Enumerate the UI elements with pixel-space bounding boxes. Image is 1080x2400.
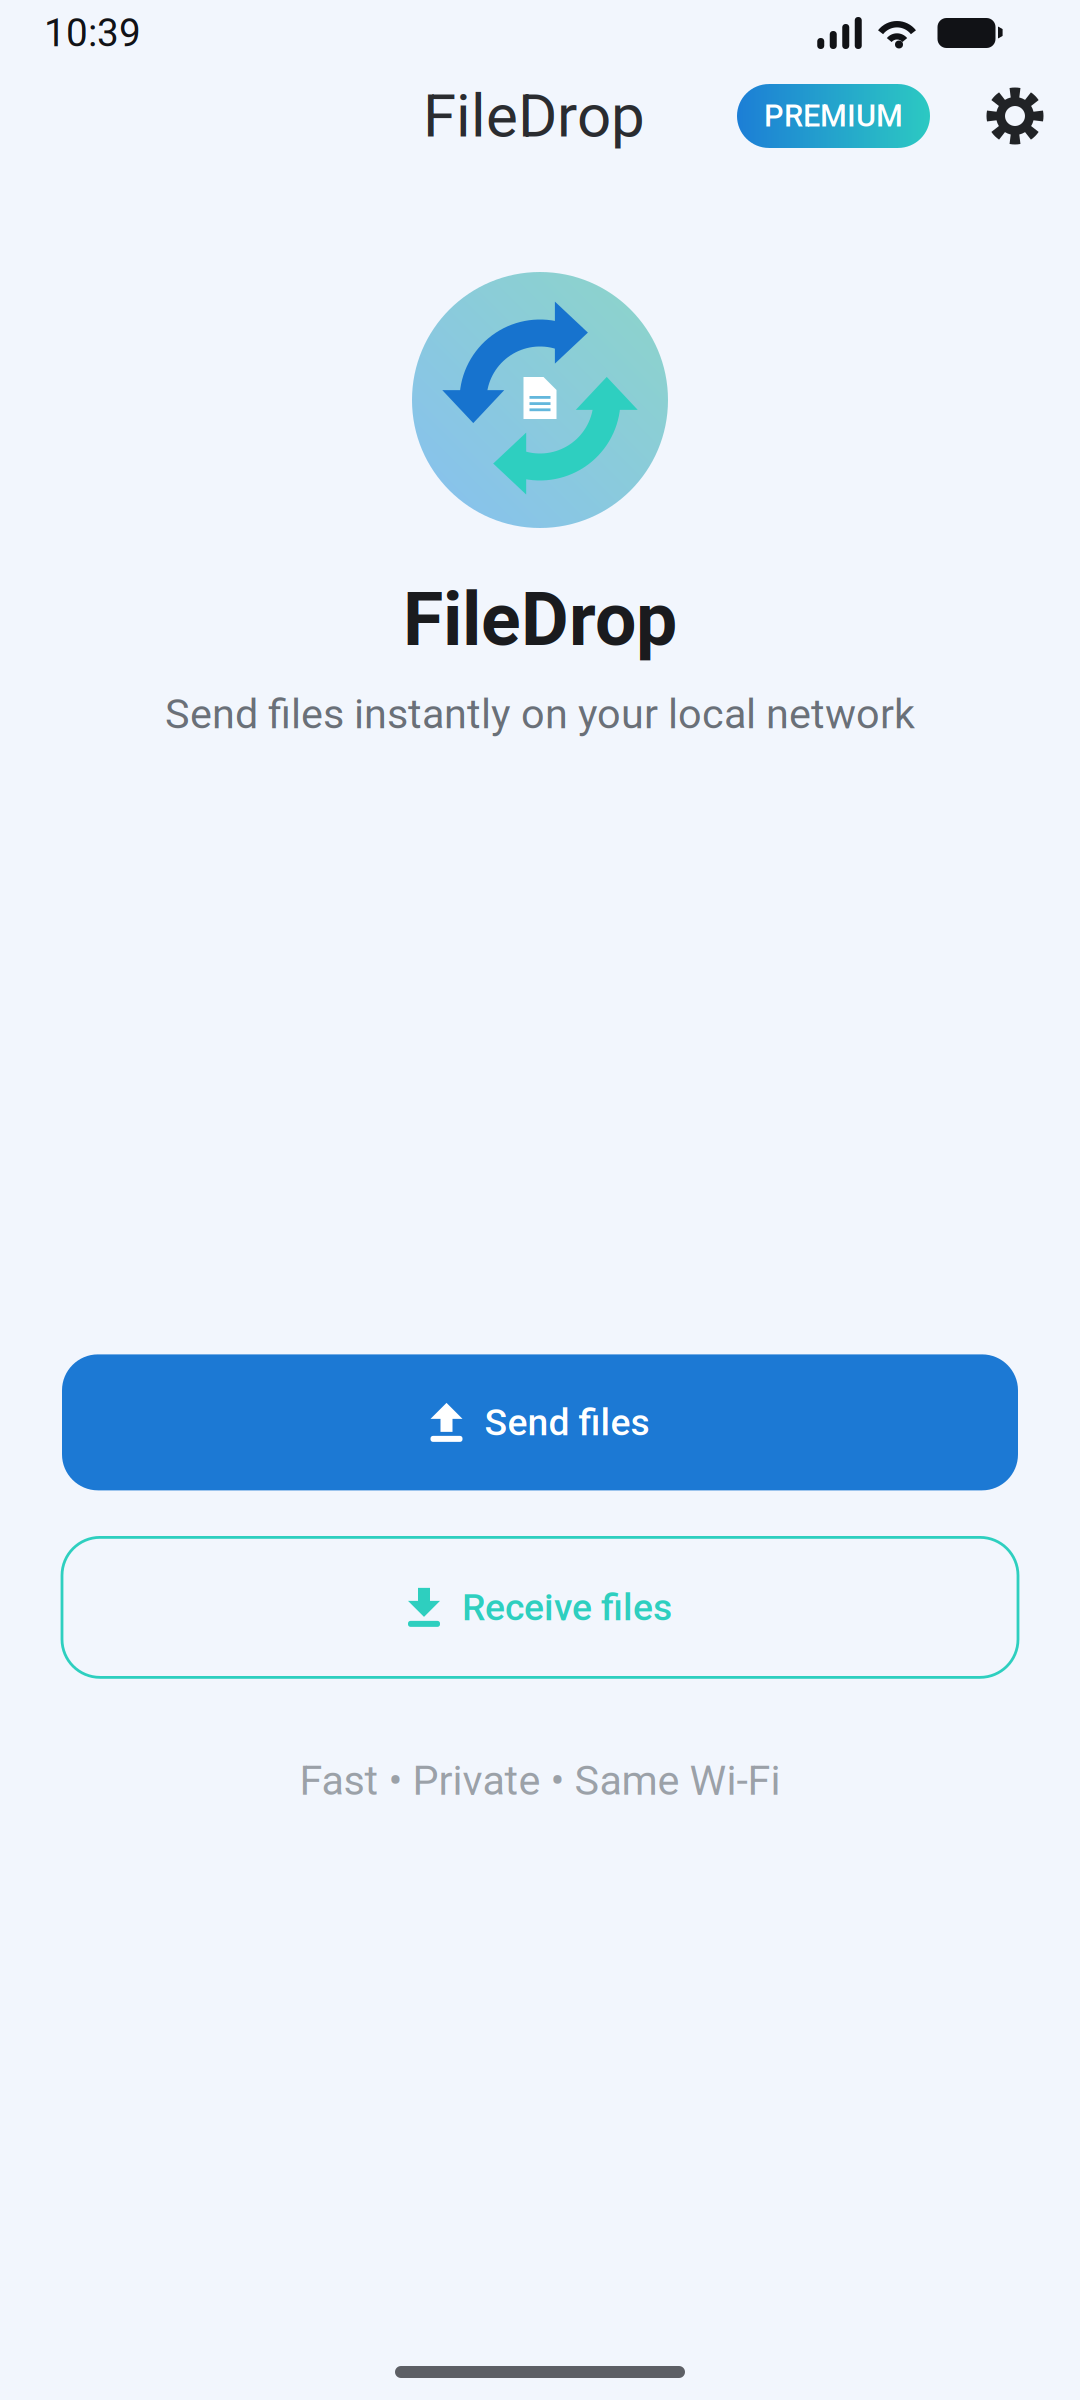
button[interactable]: Send files <box>62 1354 1018 1490</box>
staticText: Receive files <box>462 1585 672 1629</box>
staticText: Fast • Private • Same Wi-Fi <box>299 1756 780 1805</box>
button[interactable]: Receive files <box>62 1537 1018 1677</box>
staticText: 10:39 <box>44 10 141 56</box>
button[interactable]: PREMIUM <box>737 84 930 148</box>
staticText: PREMIUM <box>764 98 903 134</box>
button[interactable]: Settings <box>986 87 1044 145</box>
staticText: Send files instantly on your local netwo… <box>165 690 915 738</box>
staticText: FileDrop <box>423 81 645 151</box>
staticText: FileDrop <box>403 577 677 663</box>
staticText: Send files <box>484 1400 649 1444</box>
